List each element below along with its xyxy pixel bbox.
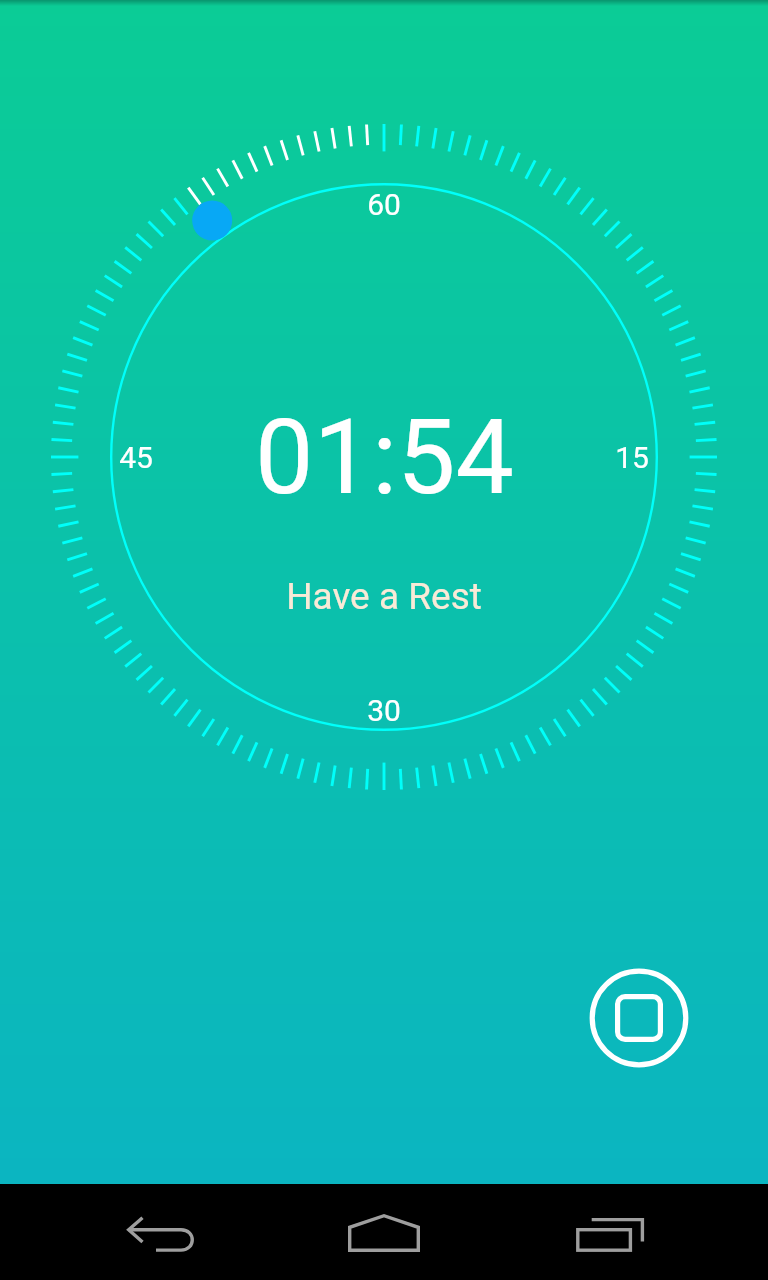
staticText: Have a Rest [286, 575, 482, 618]
staticText: 01:54 [255, 397, 514, 519]
button[interactable]: Stop [581, 960, 697, 1076]
button[interactable]: Back [0, 1184, 256, 1280]
staticText: 15 [615, 440, 649, 475]
staticText: 60 [367, 187, 401, 222]
staticText: 30 [367, 693, 401, 728]
button[interactable]: Home [256, 1184, 512, 1280]
staticText: 45 [119, 440, 153, 475]
button[interactable]: Recents [512, 1184, 768, 1280]
